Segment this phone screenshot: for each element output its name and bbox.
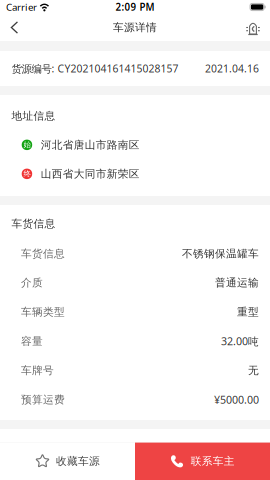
staticText: 预算运费	[21, 393, 65, 406]
button[interactable]: 联系车主	[135, 443, 270, 480]
staticText: 终	[23, 169, 30, 178]
staticText: 重型	[237, 305, 259, 319]
staticText: 收藏车源	[56, 455, 100, 468]
staticText: 2:09 PM	[115, 0, 154, 14]
staticText: 容量	[21, 334, 43, 348]
staticText: 车货信息	[11, 217, 55, 230]
staticText: 2021.04.16	[205, 61, 259, 76]
staticText: 河北省唐山市路南区	[41, 138, 140, 151]
button[interactable]: 消息通知	[239, 14, 267, 41]
staticText: 32.00吨	[221, 334, 259, 348]
staticText: 介质	[21, 276, 43, 289]
button[interactable]: 收藏车源	[0, 443, 135, 480]
staticText: 普通运输	[215, 276, 259, 289]
staticText: ¥5000.00	[214, 392, 259, 407]
staticText: Carrier	[6, 0, 37, 14]
staticText: 山西省大同市新荣区	[41, 167, 140, 180]
staticText: 车货信息	[21, 247, 65, 260]
staticText: 始	[23, 140, 30, 149]
staticText: 联系车主	[191, 455, 235, 468]
button[interactable]: 返回	[3, 14, 26, 41]
staticText: 车辆类型	[21, 305, 65, 319]
staticText: 无	[248, 364, 259, 377]
staticText: 地址信息	[11, 109, 55, 123]
staticText: 货源编号: CY202104161415028157	[11, 61, 178, 76]
staticText: 不锈钢保温罐车	[182, 247, 259, 260]
staticText: 车牌号	[21, 364, 54, 377]
staticText: 车源详情	[113, 21, 157, 34]
